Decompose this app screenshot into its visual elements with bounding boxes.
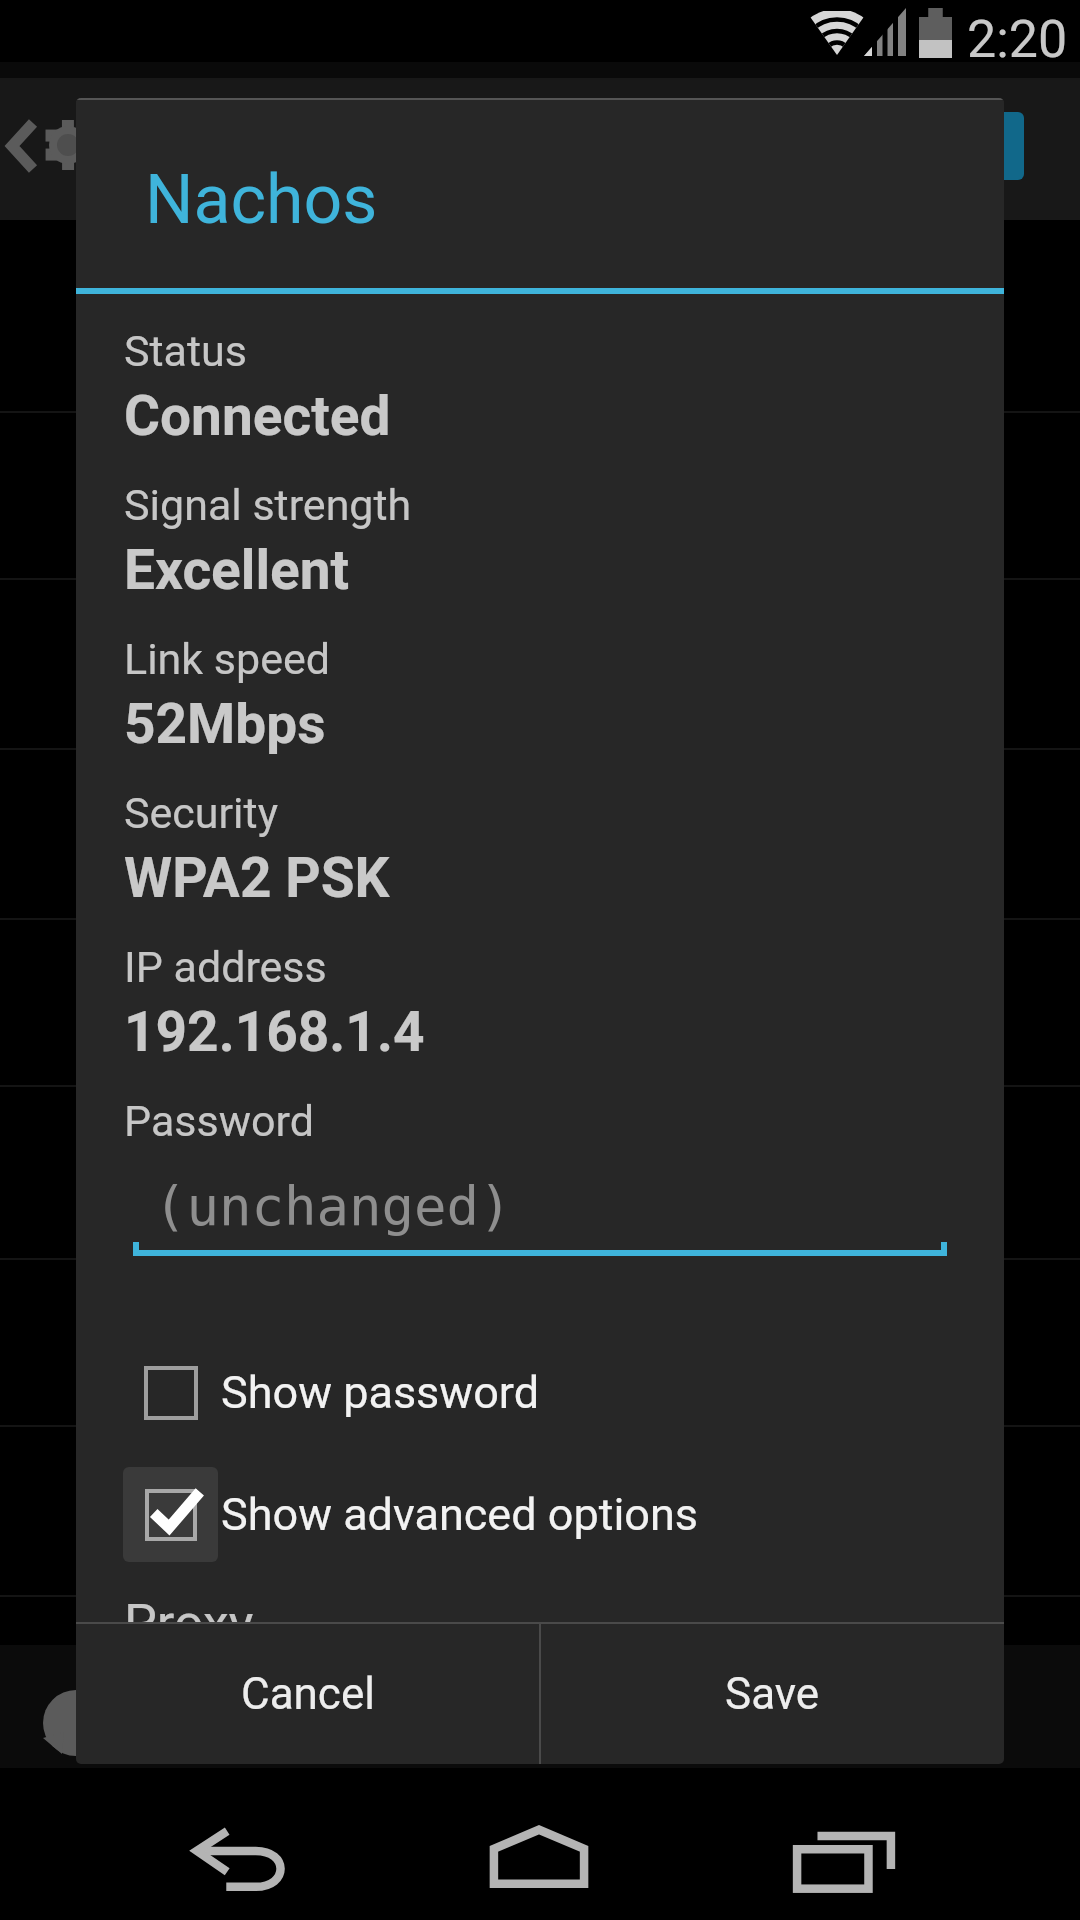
staticText: Password bbox=[124, 1096, 314, 1146]
staticText: Connected bbox=[124, 384, 391, 448]
staticText: IP address bbox=[124, 942, 327, 992]
button[interactable]: Show advanced options bbox=[123, 1466, 823, 1562]
button[interactable]: Navigate up to Settings bbox=[0, 78, 140, 220]
staticText: Excellent bbox=[124, 538, 350, 602]
staticText: WPA2 PSK bbox=[124, 846, 390, 910]
button[interactable]: Cancel bbox=[76, 1624, 539, 1764]
staticText: Show password bbox=[221, 1366, 540, 1419]
staticText: Show advanced options bbox=[221, 1488, 699, 1541]
button[interactable]: Password field bbox=[133, 1154, 947, 1256]
staticText: 2:20 bbox=[967, 9, 1068, 70]
staticText: 52Mbps bbox=[124, 692, 326, 756]
button[interactable]: Save bbox=[541, 1624, 1004, 1764]
staticText: (unchanged) bbox=[154, 1175, 512, 1238]
staticText: Security bbox=[124, 788, 278, 838]
staticText: Link speed bbox=[124, 634, 331, 684]
staticText: Signal strength bbox=[124, 480, 412, 530]
button[interactable]: Show password bbox=[110, 1345, 580, 1440]
staticText: 192.168.1.4 bbox=[124, 1000, 425, 1064]
button[interactable]: Wi-Fi on/off bbox=[980, 112, 1024, 180]
staticText: Nachos bbox=[145, 160, 378, 240]
staticText: Status bbox=[124, 326, 247, 376]
staticText: Save bbox=[725, 1668, 820, 1720]
button[interactable]: Recent apps bbox=[750, 1790, 930, 1920]
staticText: Cancel bbox=[241, 1668, 375, 1720]
button[interactable]: Back bbox=[150, 1790, 330, 1920]
staticText: Proxy bbox=[124, 1593, 254, 1622]
button[interactable]: Home bbox=[450, 1790, 630, 1920]
